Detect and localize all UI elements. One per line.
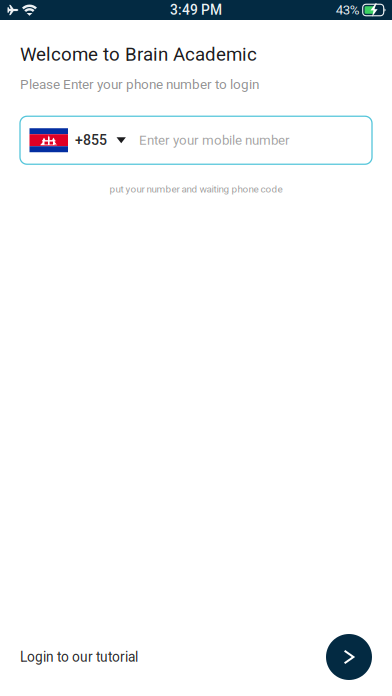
staticText: +855 — [75, 132, 107, 148]
staticText: Welcome to Brain Academic — [20, 43, 257, 65]
staticText: 3:49 PM — [170, 2, 222, 18]
button[interactable]: +855 — [20, 116, 372, 164]
button[interactable]: Continue — [326, 634, 372, 680]
staticText: put your number and waiting phone code — [109, 183, 282, 195]
staticText: 43% — [336, 2, 360, 18]
button[interactable]: Login to our tutorial — [20, 634, 144, 680]
staticText: Login to our tutorial — [20, 649, 138, 665]
staticText: Enter your mobile number — [139, 132, 290, 148]
staticText: Please Enter your phone number to login — [20, 76, 259, 92]
